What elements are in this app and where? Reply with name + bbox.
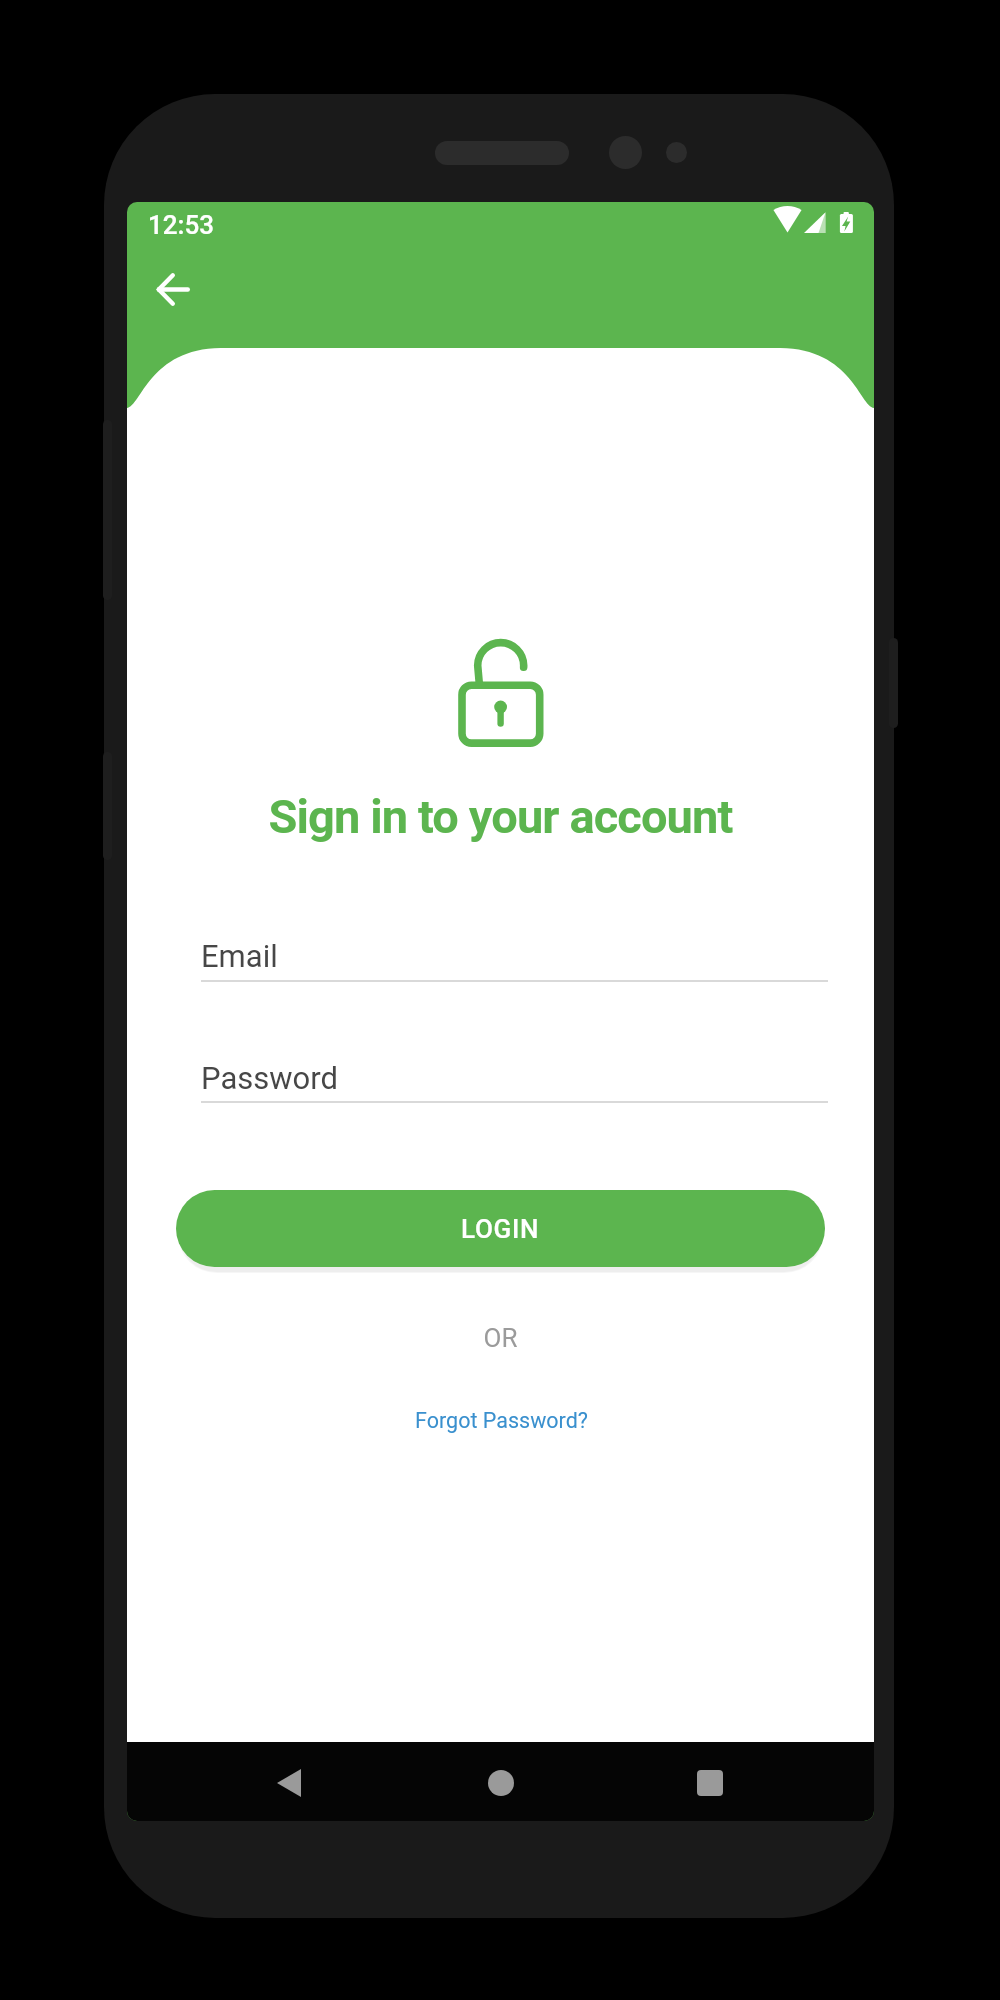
staticText: 12:53 xyxy=(148,210,215,240)
button[interactable]: Home xyxy=(461,1742,541,1821)
button[interactable]: Password xyxy=(201,1060,828,1105)
staticText: Sign in to your account xyxy=(127,789,874,844)
staticText: OR xyxy=(127,1323,874,1353)
button[interactable]: Recent apps xyxy=(670,1742,750,1821)
button[interactable]: Back xyxy=(132,246,218,332)
button[interactable]: Back xyxy=(249,1742,329,1821)
button[interactable]: LOGIN xyxy=(176,1190,825,1267)
button[interactable]: Email xyxy=(201,938,828,984)
staticText: Forgot Password? xyxy=(415,1408,588,1433)
staticText: Email xyxy=(201,938,278,974)
staticText: LOGIN xyxy=(461,1214,540,1244)
staticText: Password xyxy=(201,1060,338,1096)
button[interactable]: Forgot Password? xyxy=(396,1398,606,1442)
